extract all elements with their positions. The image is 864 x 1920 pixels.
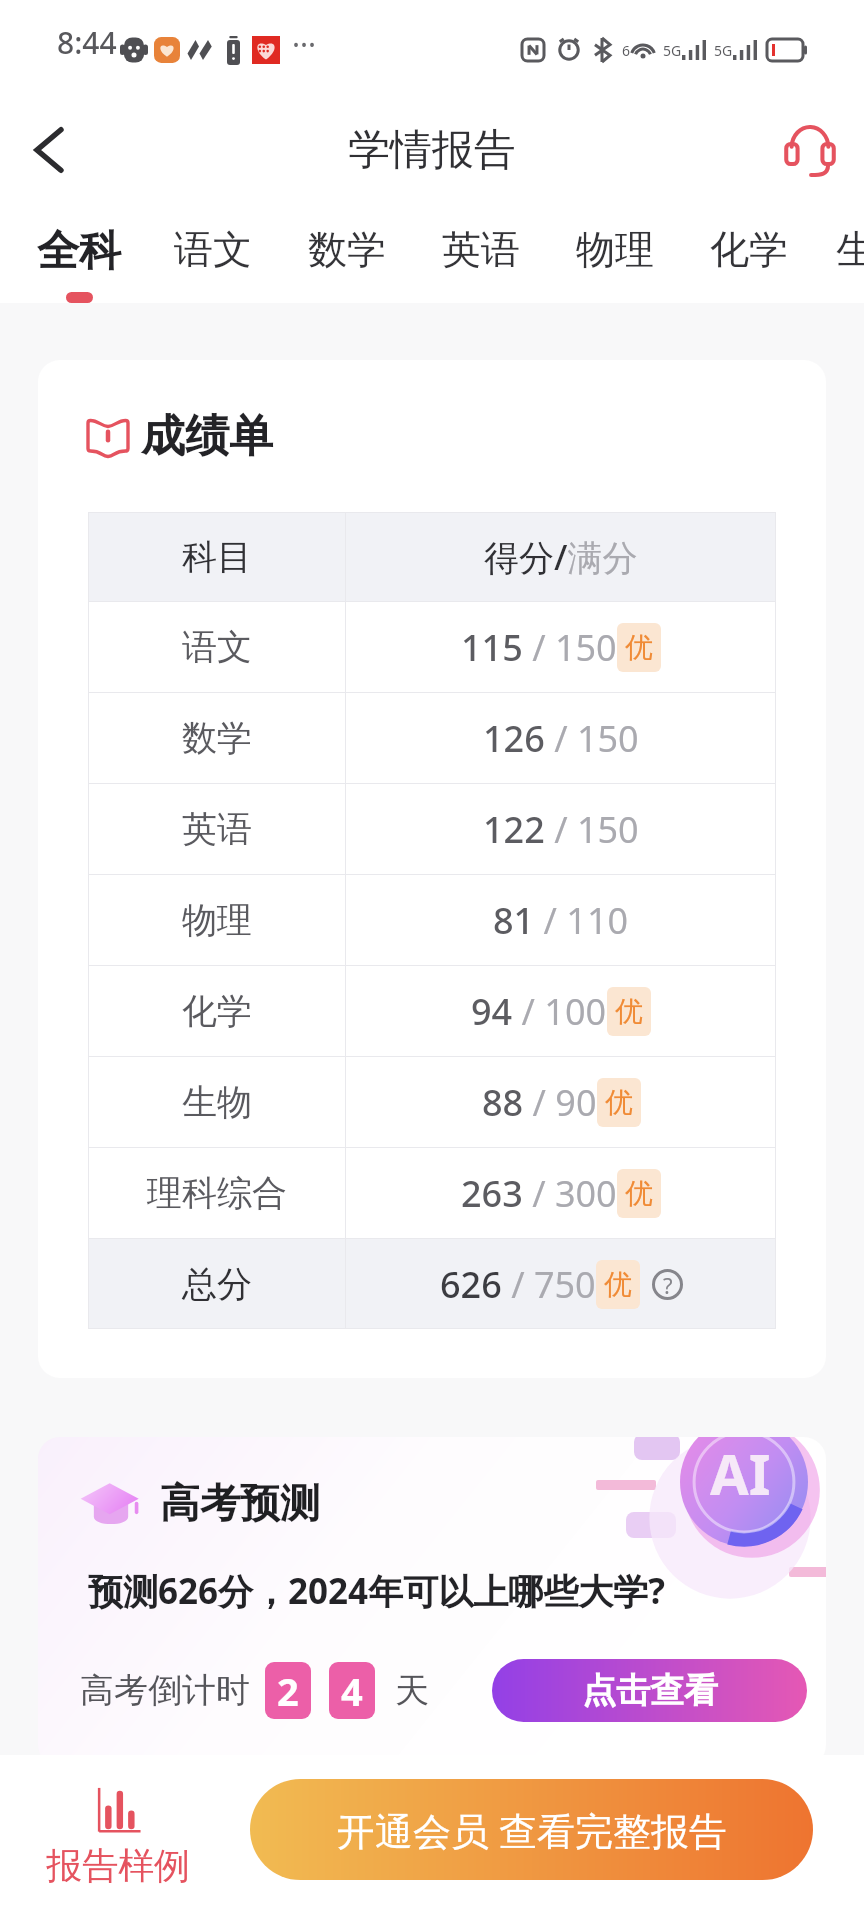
staticText: 天 — [395, 1669, 429, 1712]
button[interactable]: 生 — [791, 200, 864, 303]
button[interactable]: 英语 — [417, 200, 545, 303]
staticText: 626 / 750 — [440, 1260, 596, 1309]
staticText: 数学 — [308, 225, 386, 274]
staticText: 科目 — [182, 535, 252, 579]
staticText: 预测626分，2024年可以上哪些大学? — [88, 1567, 665, 1615]
staticText: 英语 — [442, 225, 520, 274]
staticText: 6 — [622, 41, 631, 60]
staticText: 94 / 100 — [471, 987, 607, 1036]
staticText: 优 — [604, 1267, 632, 1302]
staticText: 成绩单 — [141, 409, 273, 464]
staticText: 263 / 300 — [461, 1169, 617, 1218]
staticText: 物理 — [576, 225, 654, 274]
button[interactable]: 点击查看 — [492, 1659, 807, 1722]
staticText: ? — [663, 1270, 673, 1300]
staticText: 化学 — [710, 225, 788, 274]
staticText: 8:44 — [57, 22, 117, 63]
staticText: 81 / 110 — [493, 896, 629, 945]
staticText: 优 — [625, 1176, 653, 1211]
button[interactable]: 数学 — [283, 200, 411, 303]
staticText: 高考预测 — [160, 1478, 320, 1528]
staticText: 点击查看 — [582, 1669, 718, 1712]
staticText: 优 — [605, 1085, 633, 1120]
staticText: ··· — [292, 24, 317, 65]
staticText: 开通会员 查看完整报告 — [337, 1804, 727, 1856]
button[interactable]: 开通会员 查看完整报告 — [250, 1779, 813, 1880]
staticText: 语文 — [182, 625, 252, 669]
button[interactable]: Back — [13, 114, 85, 186]
staticText: 5G — [663, 41, 682, 60]
button[interactable]: Help about total score — [652, 1269, 683, 1300]
staticText: 学情报告 — [348, 124, 516, 177]
button[interactable]: Customer service — [774, 114, 846, 186]
staticText: 生 — [836, 225, 864, 274]
staticText: 化学 — [182, 989, 252, 1033]
button[interactable]: 全科 — [15, 200, 143, 303]
staticText: 优 — [615, 994, 643, 1029]
staticText: 2 — [277, 1665, 299, 1717]
staticText: 报告样例 — [46, 1843, 190, 1888]
staticText: 英语 — [182, 807, 252, 851]
button[interactable]: 物理 — [551, 200, 679, 303]
staticText: 数学 — [182, 716, 252, 760]
staticText: 115 / 150 — [461, 623, 617, 672]
staticText: 88 / 90 — [482, 1078, 597, 1127]
staticText: 122 / 150 — [483, 805, 639, 854]
staticText: AI — [710, 1437, 771, 1511]
staticText: 得分/满分 — [484, 533, 638, 581]
staticText: 物理 — [182, 898, 252, 942]
staticText: 126 / 150 — [483, 714, 639, 763]
staticText: 理科综合 — [147, 1171, 287, 1215]
button[interactable]: 化学 — [685, 200, 813, 303]
button[interactable]: 语文 — [149, 200, 277, 303]
staticText: 语文 — [174, 225, 252, 274]
staticText: 优 — [625, 630, 653, 665]
staticText: 4 — [341, 1665, 363, 1717]
staticText: 5G — [714, 41, 733, 60]
staticText: 全科 — [37, 225, 121, 278]
button[interactable]: 报告样例 — [37, 1787, 198, 1888]
staticText: 总分 — [182, 1262, 252, 1306]
staticText: 生物 — [182, 1080, 252, 1124]
staticText: 高考倒计时 — [80, 1669, 250, 1712]
